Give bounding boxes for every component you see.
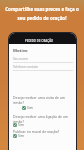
staticText: irmão?: [13, 119, 24, 124]
button[interactable]: PEDIDO DE ORAÇÃO: [9, 33, 76, 44]
other: Sim: [22, 106, 26, 110]
staticText: irmão?: [13, 100, 24, 105]
staticText: Deseja receber uma ligação de um: [13, 114, 69, 119]
staticText: Deseja receber uma visita de um: [13, 95, 65, 100]
staticText: Motivo: [13, 48, 28, 54]
staticText: PEDIDO DE ORAÇÃO: [25, 39, 54, 43]
button[interactable]: Sim: [13, 133, 24, 138]
staticText: Publicar no mural de oração?: [13, 129, 60, 134]
staticText: Seu nome: [13, 57, 29, 61]
staticText: Sim: [27, 105, 33, 110]
staticText: Compartilhe suas preces e faça o seu ped…: [5, 6, 79, 21]
other: Sim: [13, 134, 17, 138]
other: Sim: [13, 123, 17, 127]
staticText: Telefone contato: [13, 65, 39, 69]
button[interactable]: Sim: [22, 105, 33, 110]
staticText: Sim: [18, 122, 24, 127]
button[interactable]: Telefone contato: [13, 65, 73, 71]
button[interactable]: Sim: [13, 122, 24, 127]
staticText: Sim: [18, 133, 24, 138]
button[interactable]: Seu nome: [13, 57, 73, 63]
